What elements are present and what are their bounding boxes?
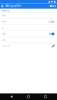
- button[interactable]: Recent apps: [41, 94, 50, 100]
- button[interactable]: Photo: [0, 19, 57, 25]
- button[interactable]: Public: [0, 31, 57, 37]
- button[interactable]: Back: [7, 94, 16, 100]
- staticText: ABOUT YOU: [1, 10, 9, 12]
- staticText: Name: [1, 15, 5, 17]
- staticText: Add website: [1, 45, 9, 47]
- staticText: Photo: [1, 21, 5, 23]
- staticText: Links: [1, 39, 5, 41]
- staticText: Bio: [1, 27, 3, 29]
- button[interactable]: Name: [0, 13, 57, 19]
- staticText: SAVE: [49, 4, 55, 8]
- button[interactable]: Home: [24, 94, 33, 100]
- button[interactable]: Bio: [0, 25, 57, 31]
- button[interactable]: Links: [0, 37, 57, 43]
- button[interactable]: Back: [1, 3, 4, 9]
- button[interactable]: SAVE: [48, 3, 57, 9]
- staticText: Edit profile: [5, 4, 21, 8]
- button[interactable]: Add website: [0, 43, 57, 49]
- staticText: Public: [1, 33, 5, 35]
